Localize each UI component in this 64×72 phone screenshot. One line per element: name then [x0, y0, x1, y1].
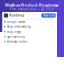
- staticText: Roadmap: [9, 14, 24, 17]
- staticText: Mailbox Product Roadmap: [5, 2, 59, 7]
- staticText: Release notes: [7, 40, 27, 43]
- staticText: New task: [43, 14, 54, 17]
- staticText: Sync meeting: [7, 35, 25, 38]
- button[interactable]: Design review: [2, 19, 57, 24]
- staticText: Plan, track and ship — Q4 2024: [10, 7, 54, 11]
- button[interactable]: App: [4, 13, 8, 18]
- button[interactable]: Bug triage: [2, 29, 57, 34]
- staticText: Ship onboarding: [7, 25, 31, 28]
- button[interactable]: Ship onboarding: [2, 24, 57, 29]
- button[interactable]: Release notes: [2, 39, 57, 44]
- button[interactable]: New task: [41, 13, 56, 18]
- staticText: Bug triage: [7, 30, 22, 33]
- button[interactable]: Sync meeting: [2, 34, 57, 39]
- staticText: Design review: [7, 20, 25, 23]
